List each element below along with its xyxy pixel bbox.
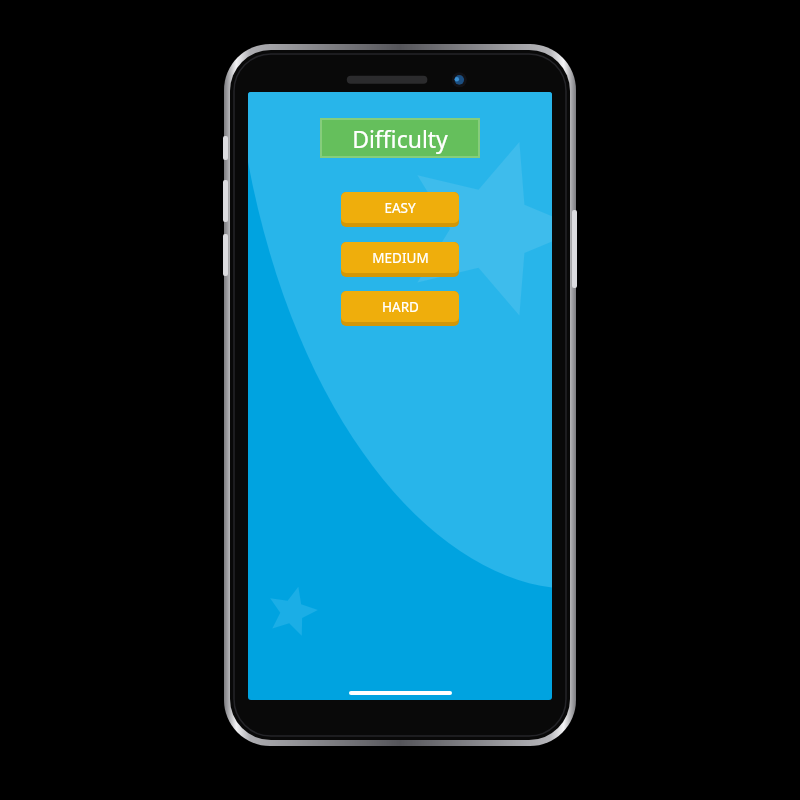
button[interactable]: HARD <box>341 291 459 326</box>
staticText: Difficulty <box>352 123 448 154</box>
button[interactable]: EASY <box>341 192 459 227</box>
staticText: HARD <box>382 298 419 316</box>
staticText: EASY <box>384 199 416 217</box>
button[interactable]: Difficulty <box>322 120 478 156</box>
staticText: MEDIUM <box>372 249 429 267</box>
button[interactable]: MEDIUM <box>341 242 459 277</box>
